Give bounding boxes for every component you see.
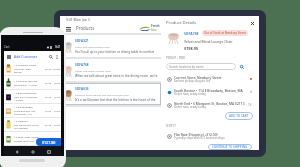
button[interactable]: SOFA321 xyxy=(60,35,161,57)
staticText: 1 x Bare Blackberries High Res Concentra… xyxy=(14,92,39,101)
button[interactable]: Search xyxy=(239,64,245,70)
button[interactable]: Close xyxy=(249,20,255,26)
button[interactable]: Flat Rate Shipping (+$12.00) xyxy=(166,132,255,140)
staticText: $3.50 xyxy=(44,109,51,112)
staticText: $3.50 xyxy=(52,109,60,112)
button[interactable]: 1 x Rockenwagen Sliced Bartalon Loaf, So… xyxy=(4,104,61,117)
staticText: 1 x Whipbird Red Mocha Red Mocha Dry Sna… xyxy=(14,120,39,129)
staticText: 4 xyxy=(250,90,252,94)
button[interactable]: 1 x Whipbird Red Mocha Red Mocha Dry Sna… xyxy=(4,118,61,131)
staticText: $2.99 xyxy=(44,81,51,84)
staticText: Cart xyxy=(4,45,10,49)
button[interactable]: More options xyxy=(54,54,59,59)
button[interactable]: Recents xyxy=(45,148,52,155)
button[interactable]: 1 x Bare Blackberries High Res Concentra… xyxy=(4,90,61,103)
button[interactable]: 1 x Drive Angel Natural Sesame Tahini Sa… xyxy=(4,132,61,145)
button[interactable]: Current Store: Newbury Street xyxy=(166,75,255,83)
staticText: Current Store: Newbury Street xyxy=(174,75,222,79)
staticText: SOFA768 xyxy=(184,31,199,36)
staticText: 1 x Avocado Twin Pkg ExtraVirginA, 2 Cou… xyxy=(14,80,39,86)
staticText: ADD TO CART xyxy=(229,114,249,118)
button[interactable]: 1 x Avocado Twin Pkg ExtraVirginA, 2 Cou… xyxy=(4,76,61,89)
staticText: $16.80 xyxy=(52,67,60,70)
staticText: CONTINUE TO SHIPPING xyxy=(212,145,248,149)
staticText: It's a well-known fact that the kitchen … xyxy=(75,98,159,102)
staticText: SOFA636 xyxy=(75,87,89,91)
staticText: 9:41 xyxy=(55,45,61,49)
button[interactable]: ADD TO CART xyxy=(225,112,253,120)
button[interactable]: $127.80 xyxy=(36,138,61,146)
staticText: $2.99 xyxy=(52,95,60,98)
staticText: Velvet and Metal Lounge Chair xyxy=(184,39,233,44)
button[interactable]: Menu xyxy=(65,25,72,32)
staticText: Out of Stock at Newbury Street xyxy=(204,31,246,35)
staticText: Order now, ready today xyxy=(174,92,206,96)
staticText: $198.95 xyxy=(184,46,199,51)
staticText: Velvet and Metal Lounge Chair xyxy=(75,69,111,72)
button[interactable]: SOFA768 xyxy=(60,59,161,81)
staticText: Fresh xyxy=(151,24,160,28)
button[interactable]: South Boston • 114 E Broadway, Boston, M… xyxy=(166,88,255,96)
staticText: $2.99 xyxy=(52,123,60,126)
staticText: Search locations by name xyxy=(169,65,204,69)
staticText: South Boston • 114 E Broadway, Boston, M… xyxy=(174,88,250,92)
staticText: $5.98 xyxy=(52,81,60,84)
staticText: SOFA321 xyxy=(75,39,89,43)
staticText: North End • 6 Margaret St, Boston, MA 02… xyxy=(174,101,245,105)
staticText: $127.80 xyxy=(42,140,56,145)
button[interactable]: SOFA636 xyxy=(60,83,161,105)
staticText: Fabric and Metal Dining Chair xyxy=(75,45,110,48)
button[interactable]: Menu xyxy=(6,54,11,59)
staticText: Add Customer xyxy=(14,54,38,59)
staticText: Order now, ready today xyxy=(174,105,206,109)
staticText: Typically ships within 3 business days xyxy=(174,136,225,140)
button[interactable]: Back xyxy=(13,148,20,155)
button[interactable]: Search locations by name xyxy=(166,63,236,70)
button[interactable]: CONTINUE TO SHIPPING xyxy=(208,144,252,150)
staticText: SHIP IT xyxy=(166,124,176,128)
staticText: When we talk about great taste in the di… xyxy=(75,74,159,78)
staticText xyxy=(44,137,51,140)
staticText: Flat Rate Shipping (+$12.00) xyxy=(174,132,218,136)
staticText: PICKUP - FREE xyxy=(166,56,186,60)
staticText: SOFA768 xyxy=(75,63,89,67)
staticText: Textured Faux Leather and Metal Dining C… xyxy=(75,93,129,96)
staticText: 1 x Drive Angel Natural Sesame Tahini Sa… xyxy=(14,136,39,142)
staticText: 16 xyxy=(248,103,252,107)
staticText: Line xyxy=(151,28,157,32)
staticText: $8.40 xyxy=(44,67,51,70)
staticText: Products xyxy=(76,25,95,31)
button[interactable]: Search xyxy=(48,54,53,59)
staticText: Earliest pickup: August 3rd xyxy=(174,79,211,83)
staticText: 1 x Isabelline Cookie Company Albert Blo… xyxy=(14,64,39,73)
staticText: You'll pull up to your kitchen or dining… xyxy=(75,50,159,54)
staticText: $2.99 xyxy=(44,95,51,98)
button[interactable]: North End • 6 Margaret St, Boston, MA 02… xyxy=(166,101,255,109)
button[interactable]: 1 x Isabelline Cookie Company Albert Blo… xyxy=(4,61,61,75)
staticText: 9:41 Mon Jun 3 xyxy=(66,17,90,22)
staticText: $2.99 xyxy=(44,123,51,126)
button[interactable]: Home xyxy=(29,148,36,155)
staticText xyxy=(52,137,60,140)
staticText: 1 x Rockenwagen Sliced Bartalon Loaf, So… xyxy=(14,106,39,115)
staticText: Product Details xyxy=(166,20,196,26)
